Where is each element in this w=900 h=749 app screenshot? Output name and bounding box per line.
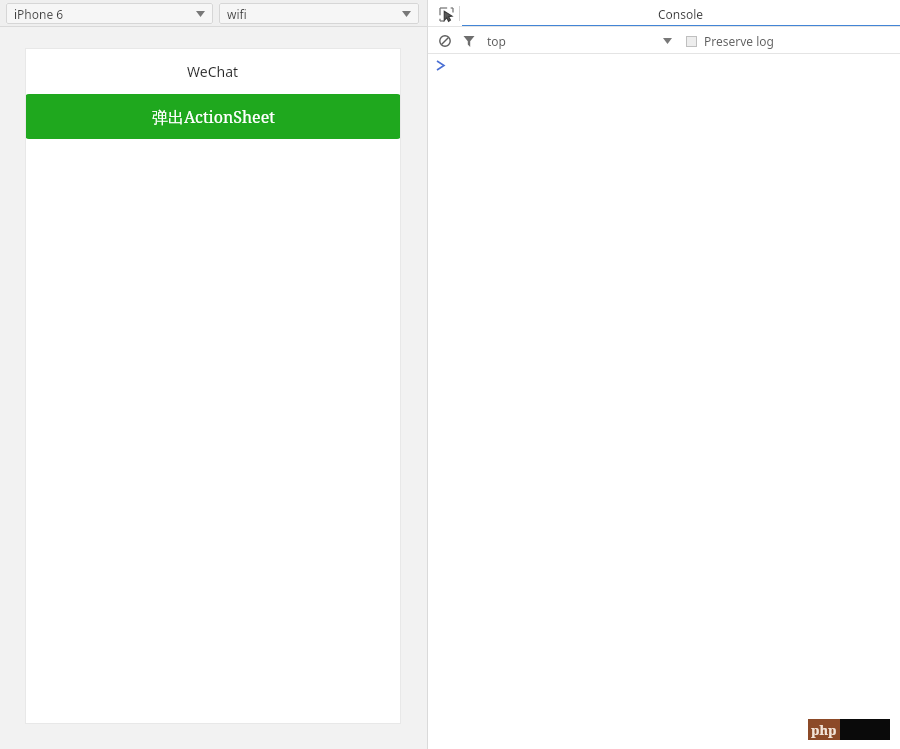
button[interactable]	[428, 54, 900, 76]
staticText: php	[811, 721, 837, 739]
staticText: wifi	[227, 6, 247, 22]
staticText: top	[487, 33, 506, 49]
button[interactable]: Clear console	[435, 31, 455, 51]
button[interactable]: Log level	[658, 32, 676, 50]
button[interactable]: iPhone 6	[6, 3, 213, 24]
button[interactable]: wifi	[219, 3, 419, 24]
button[interactable]: Console	[462, 0, 900, 27]
staticText: Console	[658, 6, 704, 22]
staticText: iPhone 6	[14, 6, 64, 22]
button[interactable]: 弹出ActionSheet	[25, 94, 401, 139]
staticText: Preserve log	[704, 33, 774, 49]
staticText: 弹出ActionSheet	[152, 106, 275, 128]
button[interactable]: Preserve log	[686, 33, 774, 49]
button[interactable]: Filter	[459, 31, 479, 51]
staticText: WeChat	[187, 62, 239, 81]
button[interactable]: Inspect element	[435, 3, 457, 25]
